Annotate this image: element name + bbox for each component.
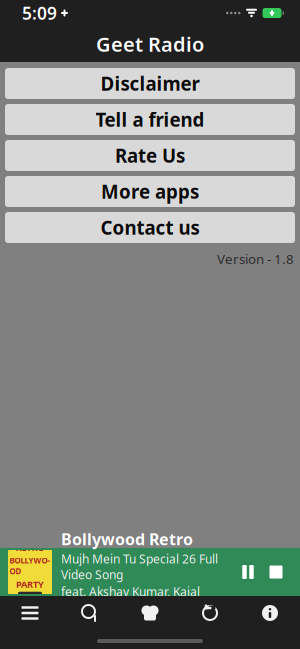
staticText: Tell a friend (95, 107, 204, 132)
staticText: BOLLYWOOD (9, 555, 50, 576)
staticText: Bollywood Retro (61, 528, 193, 550)
button[interactable]: Stop (261, 552, 291, 592)
staticText: 5:09 (22, 1, 57, 24)
staticText: More apps (101, 179, 199, 204)
button[interactable]: Info (240, 596, 300, 630)
staticText: Mujh Mein Tu Special 26 Full Video Song (61, 551, 218, 583)
button[interactable]: Search (60, 596, 120, 630)
button[interactable]: Tell a friend (5, 104, 295, 135)
button[interactable]: Pause (235, 552, 261, 592)
staticText: Rate Us (115, 143, 185, 168)
staticText: Geet Radio (96, 31, 204, 57)
button[interactable]: Favorites (120, 596, 180, 630)
staticText: PARTY (16, 578, 44, 590)
button[interactable]: Contact us (5, 212, 295, 243)
staticText: RETRO (15, 541, 44, 554)
button[interactable]: History (180, 596, 240, 630)
staticText: feat. Akshay Kumar, Kajal Aggarwal (61, 584, 200, 615)
staticText: Version - 1.8 (217, 250, 294, 268)
staticText: Disclaimer (100, 71, 199, 96)
button[interactable]: Menu (0, 596, 60, 630)
button[interactable]: More apps (5, 176, 295, 207)
button[interactable]: Disclaimer (5, 68, 295, 99)
button[interactable]: Rate Us (5, 140, 295, 171)
staticText: Contact us (100, 215, 199, 240)
